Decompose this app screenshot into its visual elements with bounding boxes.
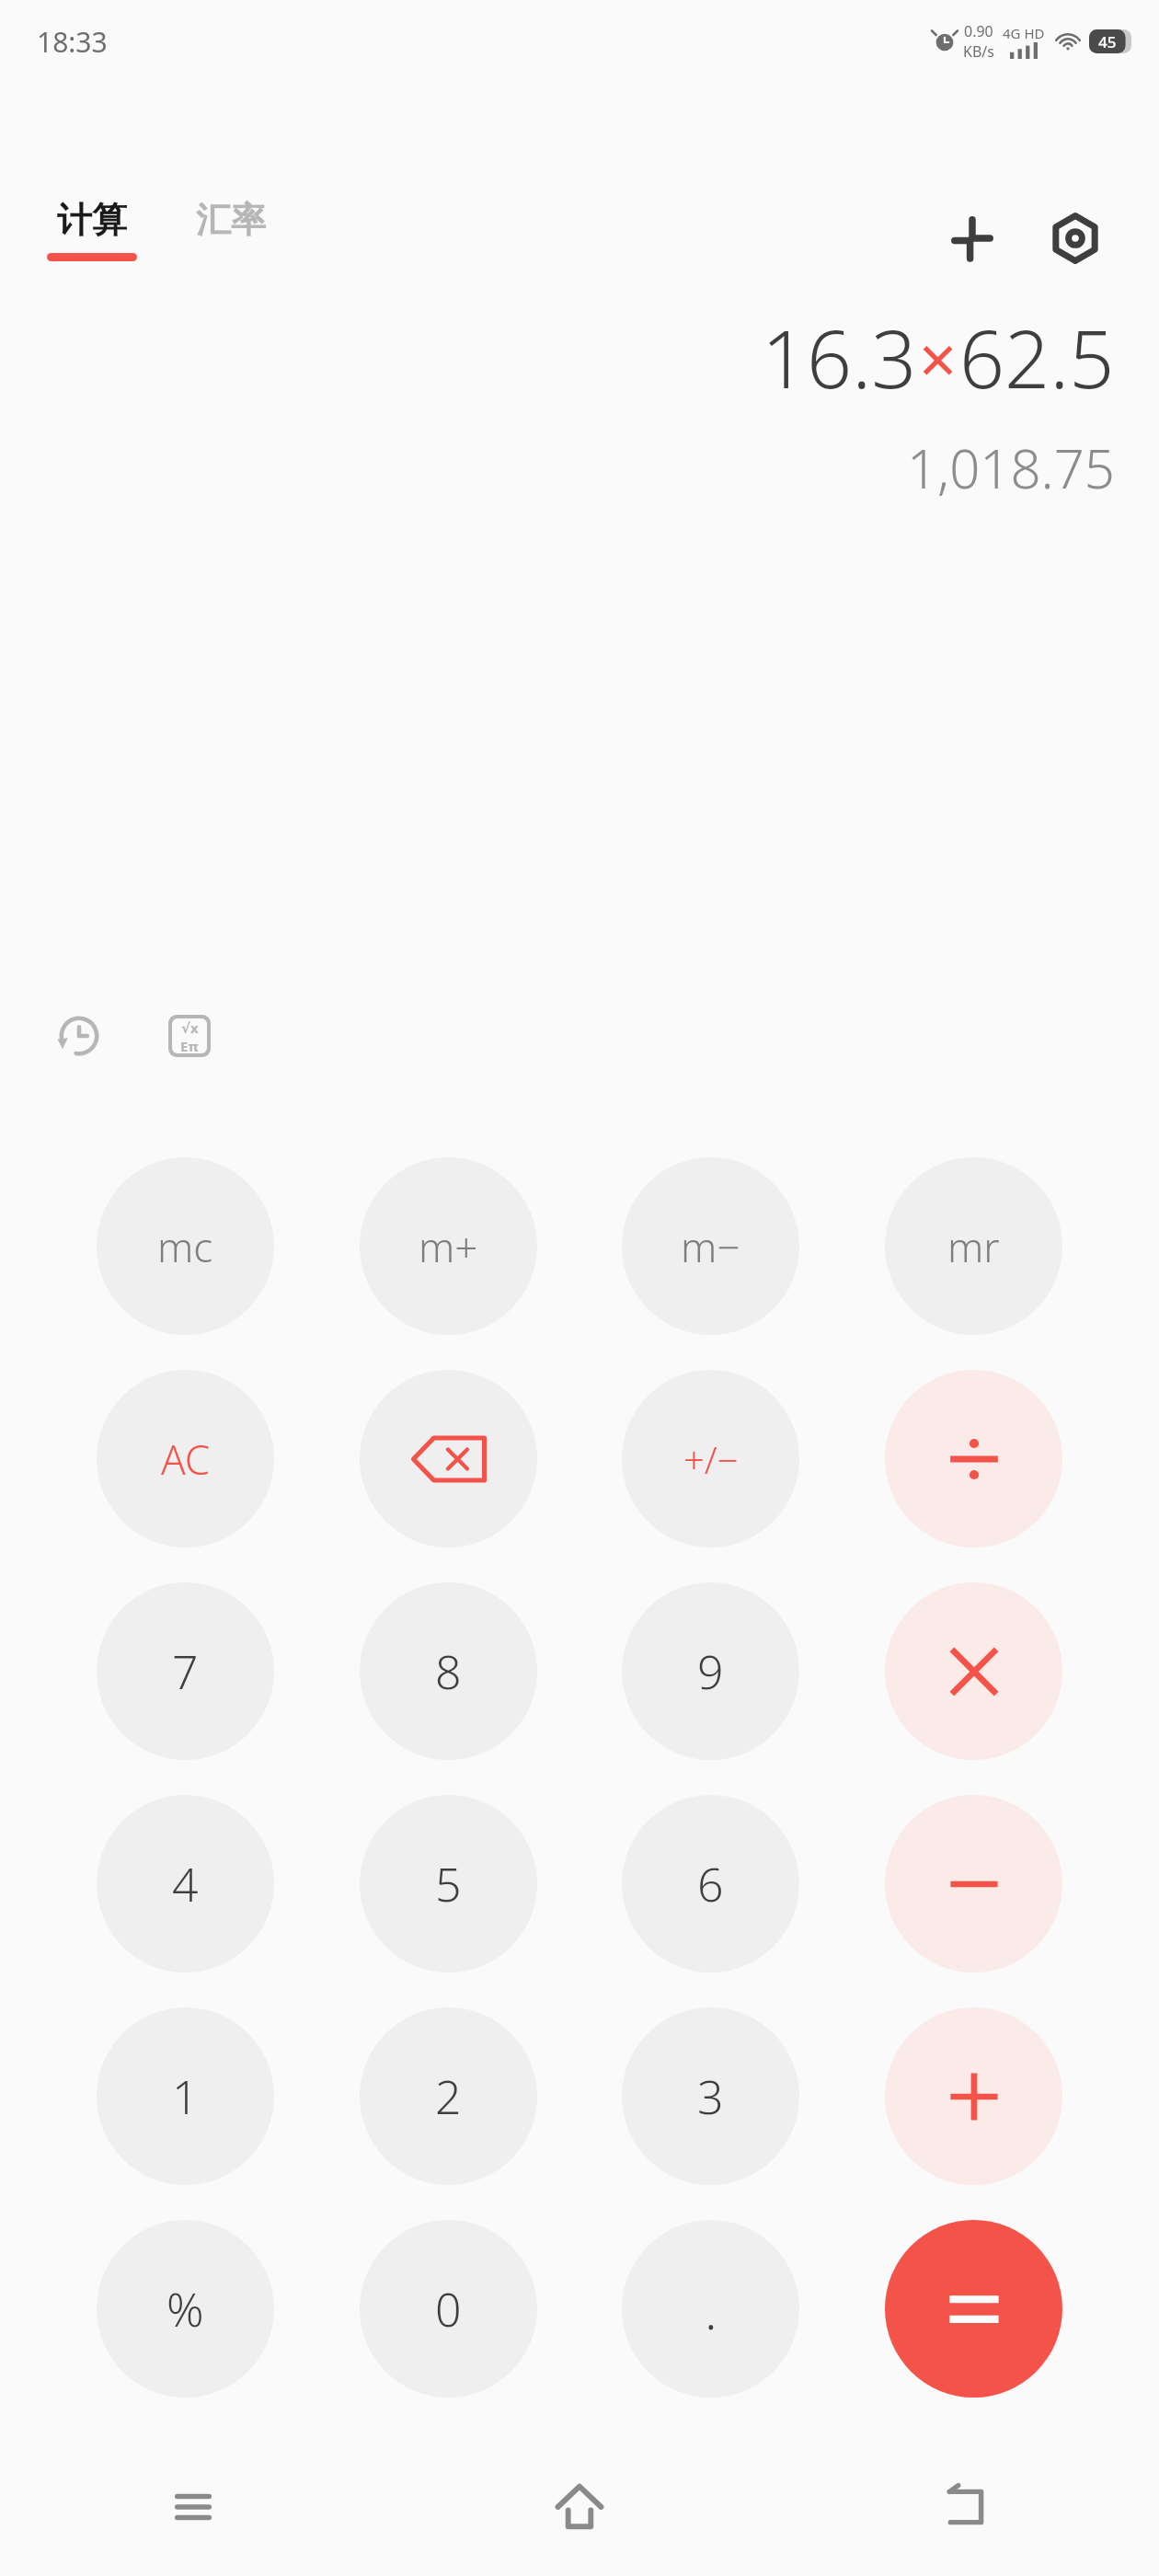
staticText: 4G HD [1003, 24, 1045, 42]
button[interactable]: +/− [622, 1370, 799, 1547]
button[interactable]: mc [97, 1157, 274, 1335]
staticText: m+ [419, 1219, 478, 1274]
button[interactable]: Divide [885, 1370, 1062, 1547]
staticText: 6 [697, 1853, 724, 1915]
button[interactable]: 4 [97, 1795, 274, 1972]
button[interactable]: Back [773, 2438, 1159, 2576]
staticText: 0 [435, 2278, 462, 2340]
button[interactable]: History [44, 1001, 114, 1071]
button[interactable]: 2 [360, 2007, 537, 2185]
button[interactable]: 7 [97, 1582, 274, 1760]
staticText: 3 [697, 2065, 724, 2128]
button[interactable]: Home [386, 2438, 773, 2576]
button[interactable]: Multiply [885, 1582, 1062, 1760]
button[interactable]: 6 [622, 1795, 799, 1972]
staticText: 2 [435, 2065, 462, 2128]
staticText: 8 [435, 1640, 462, 1703]
button[interactable]: 0 [360, 2220, 537, 2398]
staticText: +/− [683, 1434, 739, 1484]
staticText: 汇率 [196, 198, 266, 242]
button[interactable]: Settings [1036, 199, 1115, 278]
button[interactable]: 1 [97, 2007, 274, 2185]
staticText: mr [947, 1219, 1000, 1274]
button[interactable]: 计算 [41, 198, 143, 261]
staticText: 计算 [57, 198, 127, 242]
staticText: 7 [172, 1640, 199, 1703]
staticText: √x [181, 1018, 199, 1037]
staticText: 62.5 [959, 304, 1115, 411]
button[interactable]: 5 [360, 1795, 537, 1972]
staticText: % [166, 2278, 204, 2340]
button[interactable]: Plus [885, 2007, 1062, 2185]
staticText: . [705, 2274, 717, 2344]
button[interactable]: Recent apps [0, 2438, 386, 2576]
button[interactable]: Delete [360, 1370, 537, 1547]
staticText: 4 [172, 1853, 199, 1915]
staticText: 18:33 [37, 23, 108, 61]
staticText: 1 [172, 2065, 199, 2128]
button[interactable]: mr [885, 1157, 1062, 1335]
button[interactable]: . [622, 2220, 799, 2398]
button[interactable]: m− [622, 1157, 799, 1335]
button[interactable]: % [97, 2220, 274, 2398]
staticText: Eπ [180, 1037, 199, 1053]
button[interactable]: 3 [622, 2007, 799, 2185]
staticText: 45 [1098, 31, 1117, 52]
staticText: mc [157, 1219, 213, 1274]
staticText: m− [681, 1219, 740, 1274]
staticText: AC [161, 1432, 211, 1487]
button[interactable]: AC [97, 1370, 274, 1547]
button[interactable]: 8 [360, 1582, 537, 1760]
button[interactable]: m+ [360, 1157, 537, 1335]
button[interactable]: Scientific mode [155, 1001, 224, 1071]
staticText: 0.90 [964, 21, 993, 41]
button[interactable]: 9 [622, 1582, 799, 1760]
staticText: 9 [697, 1640, 724, 1703]
button[interactable]: 汇率 [190, 198, 271, 242]
button[interactable]: Equals [885, 2220, 1062, 2398]
staticText: KB/s [963, 41, 994, 62]
button[interactable]: Floating window [933, 199, 1012, 278]
staticText: 1,018.75 [907, 431, 1115, 504]
staticText: × [919, 313, 958, 403]
button[interactable]: Minus [885, 1795, 1062, 1972]
staticText: 16.3 [762, 304, 917, 411]
staticText: 5 [435, 1853, 462, 1915]
